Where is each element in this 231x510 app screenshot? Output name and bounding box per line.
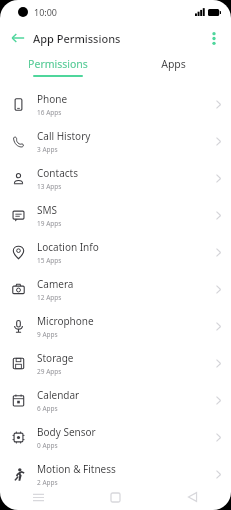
button[interactable]: Contacts (0, 160, 231, 197)
button[interactable]: Microphone (0, 308, 231, 345)
staticText: Phone (37, 92, 68, 106)
button[interactable]: Camera (0, 271, 231, 308)
button[interactable]: Call History (0, 123, 231, 160)
staticText: 16 Apps (37, 108, 62, 117)
staticText: Body Sensor (37, 425, 96, 439)
staticText: 9 Apps (37, 330, 58, 339)
staticText: 19 Apps (37, 219, 62, 228)
staticText: Storage (37, 351, 74, 365)
staticText: 6 Apps (37, 404, 58, 413)
button[interactable]: Recent apps (0, 484, 77, 510)
staticText: Motion & Fitness (37, 462, 116, 476)
staticText: 10:00 (34, 6, 58, 18)
staticText: 12 Apps (37, 293, 62, 302)
staticText: Apps (161, 57, 186, 71)
staticText: App Permissions (33, 31, 121, 46)
button[interactable]: Back (154, 484, 231, 510)
staticText: 3 Apps (37, 145, 58, 154)
staticText: Camera (37, 277, 74, 291)
button[interactable]: Back (6, 26, 30, 50)
button[interactable]: Body Sensor (0, 419, 231, 456)
button[interactable]: Storage (0, 345, 231, 382)
staticText: 15 Apps (37, 256, 62, 265)
staticText: Contacts (37, 166, 78, 180)
button[interactable]: Calendar (0, 382, 231, 419)
staticText: Location Info (37, 240, 99, 254)
staticText: 2 Apps (37, 478, 58, 487)
button[interactable]: SMS (0, 197, 231, 234)
staticText: Permissions (28, 57, 88, 71)
staticText: 13 Apps (37, 182, 62, 191)
staticText: Microphone (37, 314, 94, 328)
button[interactable]: Home (77, 484, 154, 510)
staticText: 29 Apps (37, 367, 62, 376)
button[interactable]: Permissions (0, 52, 115, 82)
button[interactable]: More options (203, 27, 225, 49)
staticText: Calendar (37, 388, 80, 402)
button[interactable]: Apps (115, 52, 231, 82)
staticText: Call History (37, 129, 91, 143)
button[interactable]: Location Info (0, 234, 231, 271)
button[interactable]: Motion & Fitness (0, 456, 231, 493)
staticText: 0 Apps (37, 441, 58, 450)
staticText: SMS (37, 203, 58, 217)
button[interactable]: Phone (0, 86, 231, 123)
